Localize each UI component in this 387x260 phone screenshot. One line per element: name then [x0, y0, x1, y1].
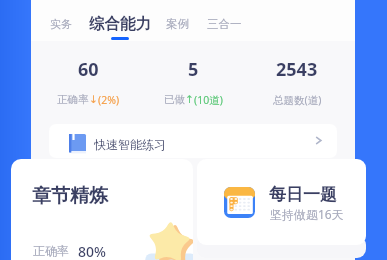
button[interactable]: 案例 [166, 17, 189, 31]
staticText: 每日一题 [269, 184, 337, 205]
staticText: 正确率 [57, 93, 89, 106]
button[interactable]: 快速智能练习 [49, 124, 337, 158]
staticText: 5 [188, 57, 199, 82]
staticText: 60 [78, 57, 99, 82]
staticText: 总题数(道) [273, 93, 322, 107]
staticText: ↑ [185, 93, 194, 105]
staticText: (10道) [194, 93, 223, 107]
staticText: 坚持做题16天 [270, 206, 344, 222]
staticText: 综合能力 [89, 14, 151, 34]
button[interactable]: 2543 [245, 56, 349, 108]
staticText: 正确率 [33, 243, 69, 258]
staticText: ↓ [89, 93, 98, 105]
staticText: 三合一 [207, 17, 242, 31]
button[interactable]: 5 [141, 56, 245, 108]
staticText: 快速智能练习 [94, 137, 166, 152]
staticText: (2%) [98, 93, 120, 107]
staticText: 实务 [50, 17, 72, 31]
button[interactable]: 每日一题 [197, 159, 366, 245]
button[interactable]: 章节精炼 [11, 159, 193, 260]
button[interactable]: 实务 [50, 17, 72, 31]
button[interactable]: 综合能力 [89, 14, 151, 34]
staticText: 章节精炼 [32, 184, 108, 208]
staticText: 80% [78, 242, 106, 260]
staticText: 2543 [276, 57, 318, 82]
button[interactable]: 三合一 [207, 17, 242, 31]
staticText: 案例 [166, 17, 189, 31]
button[interactable]: 60 [36, 56, 140, 108]
other: Open quick practice [313, 135, 324, 146]
staticText: 已做 [164, 93, 185, 106]
